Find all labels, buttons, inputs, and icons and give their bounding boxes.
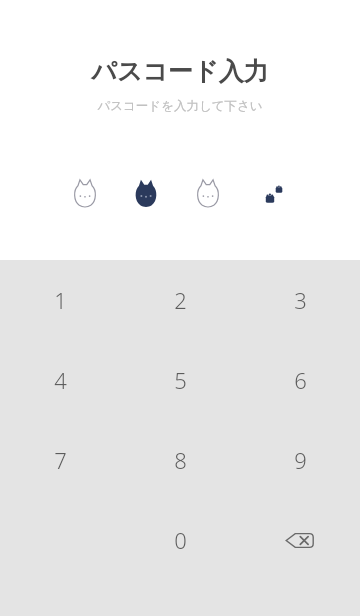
staticText: 4	[54, 365, 67, 395]
button[interactable]: 4	[0, 340, 120, 420]
button[interactable]: 6	[240, 340, 360, 420]
button[interactable]: 3	[240, 260, 360, 340]
staticText: 2	[174, 285, 187, 315]
staticText: 7	[54, 445, 67, 475]
button[interactable]: 2	[120, 260, 240, 340]
staticText: 9	[294, 445, 307, 475]
staticText: 8	[174, 445, 187, 475]
staticText: パスコード入力	[91, 56, 269, 87]
button[interactable]: 8	[120, 420, 240, 500]
button[interactable]: 0	[120, 500, 240, 580]
staticText: パスコードを入力して下さい	[97, 98, 263, 114]
staticText: 6	[294, 365, 307, 395]
staticText: 5	[174, 365, 187, 395]
button[interactable]: 9	[240, 420, 360, 500]
staticText: 0	[174, 525, 187, 555]
staticText: 1	[54, 285, 67, 315]
button[interactable]: 5	[120, 340, 240, 420]
button[interactable]: Delete	[240, 500, 360, 580]
button[interactable]: 1	[0, 260, 120, 340]
button[interactable]: 7	[0, 420, 120, 500]
staticText: 3	[294, 285, 307, 315]
